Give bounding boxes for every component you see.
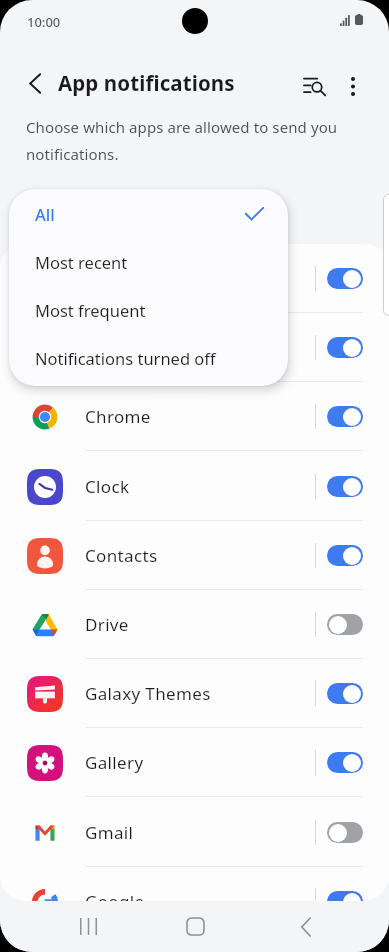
staticText: Choose which apps are allowed to send yo… xyxy=(26,117,338,165)
button[interactable]: Notifications on xyxy=(327,268,363,289)
staticText: Camera xyxy=(85,336,150,359)
button[interactable]: Notifications on xyxy=(327,545,363,566)
button[interactable]: Camera xyxy=(0,313,389,382)
button[interactable]: Recents xyxy=(60,901,116,952)
button[interactable]: Back xyxy=(278,901,334,952)
button[interactable]: Most frequent xyxy=(9,286,288,334)
button[interactable]: Chrome xyxy=(0,382,389,451)
button[interactable]: Notifications on xyxy=(327,683,363,704)
button[interactable]: Search xyxy=(293,64,337,108)
button[interactable]: Notifications on xyxy=(327,752,363,773)
staticText: App notifications xyxy=(58,69,235,97)
staticText: Gallery xyxy=(85,751,144,774)
staticText: Notifications turned off xyxy=(35,347,216,369)
staticText: Drive xyxy=(85,613,129,636)
button[interactable]: Notifications off xyxy=(327,614,363,635)
button[interactable]: Notifications off xyxy=(327,822,363,843)
button[interactable]: Notifications on xyxy=(327,476,363,497)
staticText: Most frequent xyxy=(35,299,146,321)
button[interactable]: Clock xyxy=(0,452,389,521)
staticText: Chrome xyxy=(85,405,151,428)
button[interactable]: Notifications on xyxy=(327,337,363,358)
button[interactable]: More options xyxy=(331,64,375,108)
button[interactable]: Gallery xyxy=(0,728,389,797)
button[interactable]: Contacts xyxy=(0,521,389,590)
button[interactable]: Calendar xyxy=(0,244,389,313)
button[interactable]: Notifications on xyxy=(327,891,363,901)
staticText: Calendar xyxy=(85,267,160,290)
staticText: Gmail xyxy=(85,821,134,844)
button[interactable]: Home xyxy=(167,901,223,952)
staticText: Most recent xyxy=(35,251,128,273)
staticText: 10:00 xyxy=(27,13,61,31)
button[interactable]: Notifications turned off xyxy=(9,334,288,382)
button[interactable]: Back xyxy=(15,63,55,103)
staticText: All xyxy=(35,203,55,225)
staticText: Contacts xyxy=(85,544,158,567)
button[interactable]: All xyxy=(9,190,288,238)
button[interactable]: Most recent xyxy=(9,238,288,286)
staticText: Clock xyxy=(85,475,130,498)
staticText: Galaxy Themes xyxy=(85,682,211,705)
staticText: Google xyxy=(85,890,145,901)
button[interactable]: Google xyxy=(0,867,389,901)
button[interactable]: Drive xyxy=(0,590,389,659)
button[interactable]: Notifications on xyxy=(327,406,363,427)
button[interactable]: Galaxy Themes xyxy=(0,659,389,728)
button[interactable]: Gmail xyxy=(0,798,389,867)
